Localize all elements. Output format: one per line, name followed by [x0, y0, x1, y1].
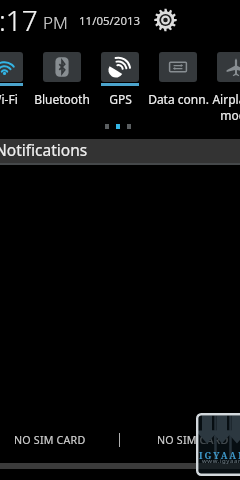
staticText: 11/05/2013 [79, 13, 141, 29]
staticText: Data conn. [148, 91, 209, 107]
staticText: Wi-Fi [0, 91, 18, 107]
staticText: 5:17 [0, 1, 38, 39]
button[interactable]: Notifications [0, 139, 240, 163]
staticText: NO SIM CARD [157, 433, 229, 448]
staticText: www.igyaan.in [202, 457, 240, 465]
button[interactable]: Wi-Fi [0, 46, 54, 107]
staticText: IGYAAN [199, 449, 240, 461]
button[interactable]: Settings [154, 9, 177, 31]
button[interactable]: Data conn. [128, 46, 228, 107]
staticText: Bluetooth [34, 91, 90, 107]
staticText: PM [43, 11, 68, 34]
staticText: mode [220, 107, 240, 123]
button[interactable]: GPS [70, 46, 170, 107]
staticText: Notifications [0, 139, 88, 160]
button[interactable]: NO SIM CARD [157, 433, 229, 448]
button[interactable]: Airplane [186, 46, 240, 123]
button[interactable]: Close shade [0, 463, 240, 469]
button[interactable]: Bluetooth [12, 46, 112, 107]
staticText: GPS [109, 91, 132, 107]
staticText: Airplane [212, 91, 240, 107]
button[interactable]: NO SIM CARD [14, 433, 86, 448]
staticText: NO SIM CARD [14, 433, 86, 448]
